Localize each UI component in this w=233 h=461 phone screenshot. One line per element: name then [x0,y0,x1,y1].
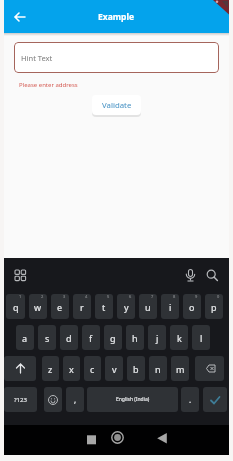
button[interactable]: y [117,294,135,319]
staticText: g [110,332,116,344]
button[interactable]: q [6,294,25,319]
staticText: n [155,363,161,375]
staticText: p [211,301,217,313]
staticText: b [133,363,139,375]
button[interactable]: i [161,294,179,319]
staticText: l [200,332,203,344]
staticText: s [45,332,50,344]
staticText: r [80,301,84,313]
button[interactable]: w [29,294,47,319]
button[interactable]: s [38,325,56,350]
button[interactable]: f [82,325,100,350]
staticText: 0 [217,294,220,299]
button[interactable]: k [170,325,188,350]
staticText: q [13,301,19,313]
staticText: 7 [151,294,154,299]
button[interactable]: u [139,294,157,319]
staticText: Example [98,11,135,23]
staticText: 2 [41,294,44,299]
staticText: a [22,332,28,344]
button[interactable]: h [126,325,144,350]
button[interactable] [195,356,224,381]
staticText: , [74,394,77,405]
staticText: x [69,363,74,375]
staticText: y [124,301,129,313]
button[interactable]: a [16,325,34,350]
staticText: Please enter address [19,81,78,89]
button[interactable] [14,11,26,23]
staticText: Hint Text [21,53,53,63]
button[interactable] [44,387,62,412]
staticText: 8 [173,294,176,299]
button[interactable]: b [127,356,145,381]
staticText: v [112,363,117,375]
staticText: k [177,332,182,344]
staticText: t [102,301,106,313]
button[interactable]: t [95,294,113,319]
button[interactable] [15,270,26,281]
button[interactable]: . [181,387,199,412]
button[interactable]: , [66,387,84,412]
staticText: 3 [63,294,66,299]
button[interactable]: g [104,325,122,350]
staticText: 6 [129,294,132,299]
button[interactable] [4,356,36,381]
button[interactable]: Validate [92,95,141,115]
button[interactable] [206,269,219,282]
button[interactable]: x [63,356,80,381]
button[interactable]: p [205,294,223,319]
button[interactable]: v [105,356,123,381]
staticText: j [156,332,159,344]
button[interactable]: m [171,356,189,381]
button[interactable] [79,425,154,455]
button[interactable] [154,425,229,455]
staticText: f [89,332,93,344]
staticText: w [34,301,42,313]
button[interactable]: English (India) [87,387,178,412]
staticText: z [48,363,53,375]
button[interactable]: o [183,294,201,319]
button[interactable]: l [192,325,210,350]
staticText: 9 [195,294,198,299]
staticText: English (India) [116,396,150,403]
button[interactable]: j [148,325,166,350]
button[interactable]: e [51,294,69,319]
staticText: m [176,363,185,375]
button[interactable]: z [42,356,59,381]
button[interactable]: d [60,325,78,350]
staticText: . [189,394,192,405]
staticText: 4 [85,294,88,299]
staticText: 5 [107,294,110,299]
staticText: ?123 [14,396,27,404]
button[interactable] [184,269,197,282]
button[interactable] [203,387,227,412]
staticText: 1 [19,294,22,299]
button[interactable]: c [84,356,101,381]
staticText: h [132,332,138,344]
button[interactable]: r [73,294,91,319]
button[interactable]: n [149,356,167,381]
staticText: o [189,301,195,313]
button[interactable]: Hint Text [14,42,219,73]
staticText: u [145,301,151,313]
staticText: e [57,301,63,313]
staticText: Validate [102,100,132,111]
staticText: d [66,332,72,344]
staticText: i [169,301,172,313]
button[interactable]: ?123 [4,387,37,412]
staticText: c [90,363,95,375]
